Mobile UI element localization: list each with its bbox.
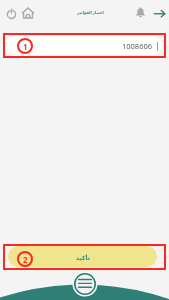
- button[interactable]: 1008606: [5, 36, 162, 55]
- staticText: 1008606: [122, 41, 153, 51]
- staticText: تأكيد: [76, 254, 90, 261]
- staticText: اختيار الفواتير: [77, 10, 104, 15]
- button[interactable]: Power: [4, 6, 18, 20]
- button[interactable]: Next: [152, 6, 166, 20]
- button[interactable]: Home: [21, 6, 35, 20]
- staticText: 1: [23, 41, 28, 52]
- button[interactable]: تأكيد: [8, 246, 157, 267]
- button[interactable]: Menu: [72, 271, 98, 297]
- button[interactable]: Notifications: [134, 6, 147, 19]
- staticText: 2: [23, 254, 28, 265]
